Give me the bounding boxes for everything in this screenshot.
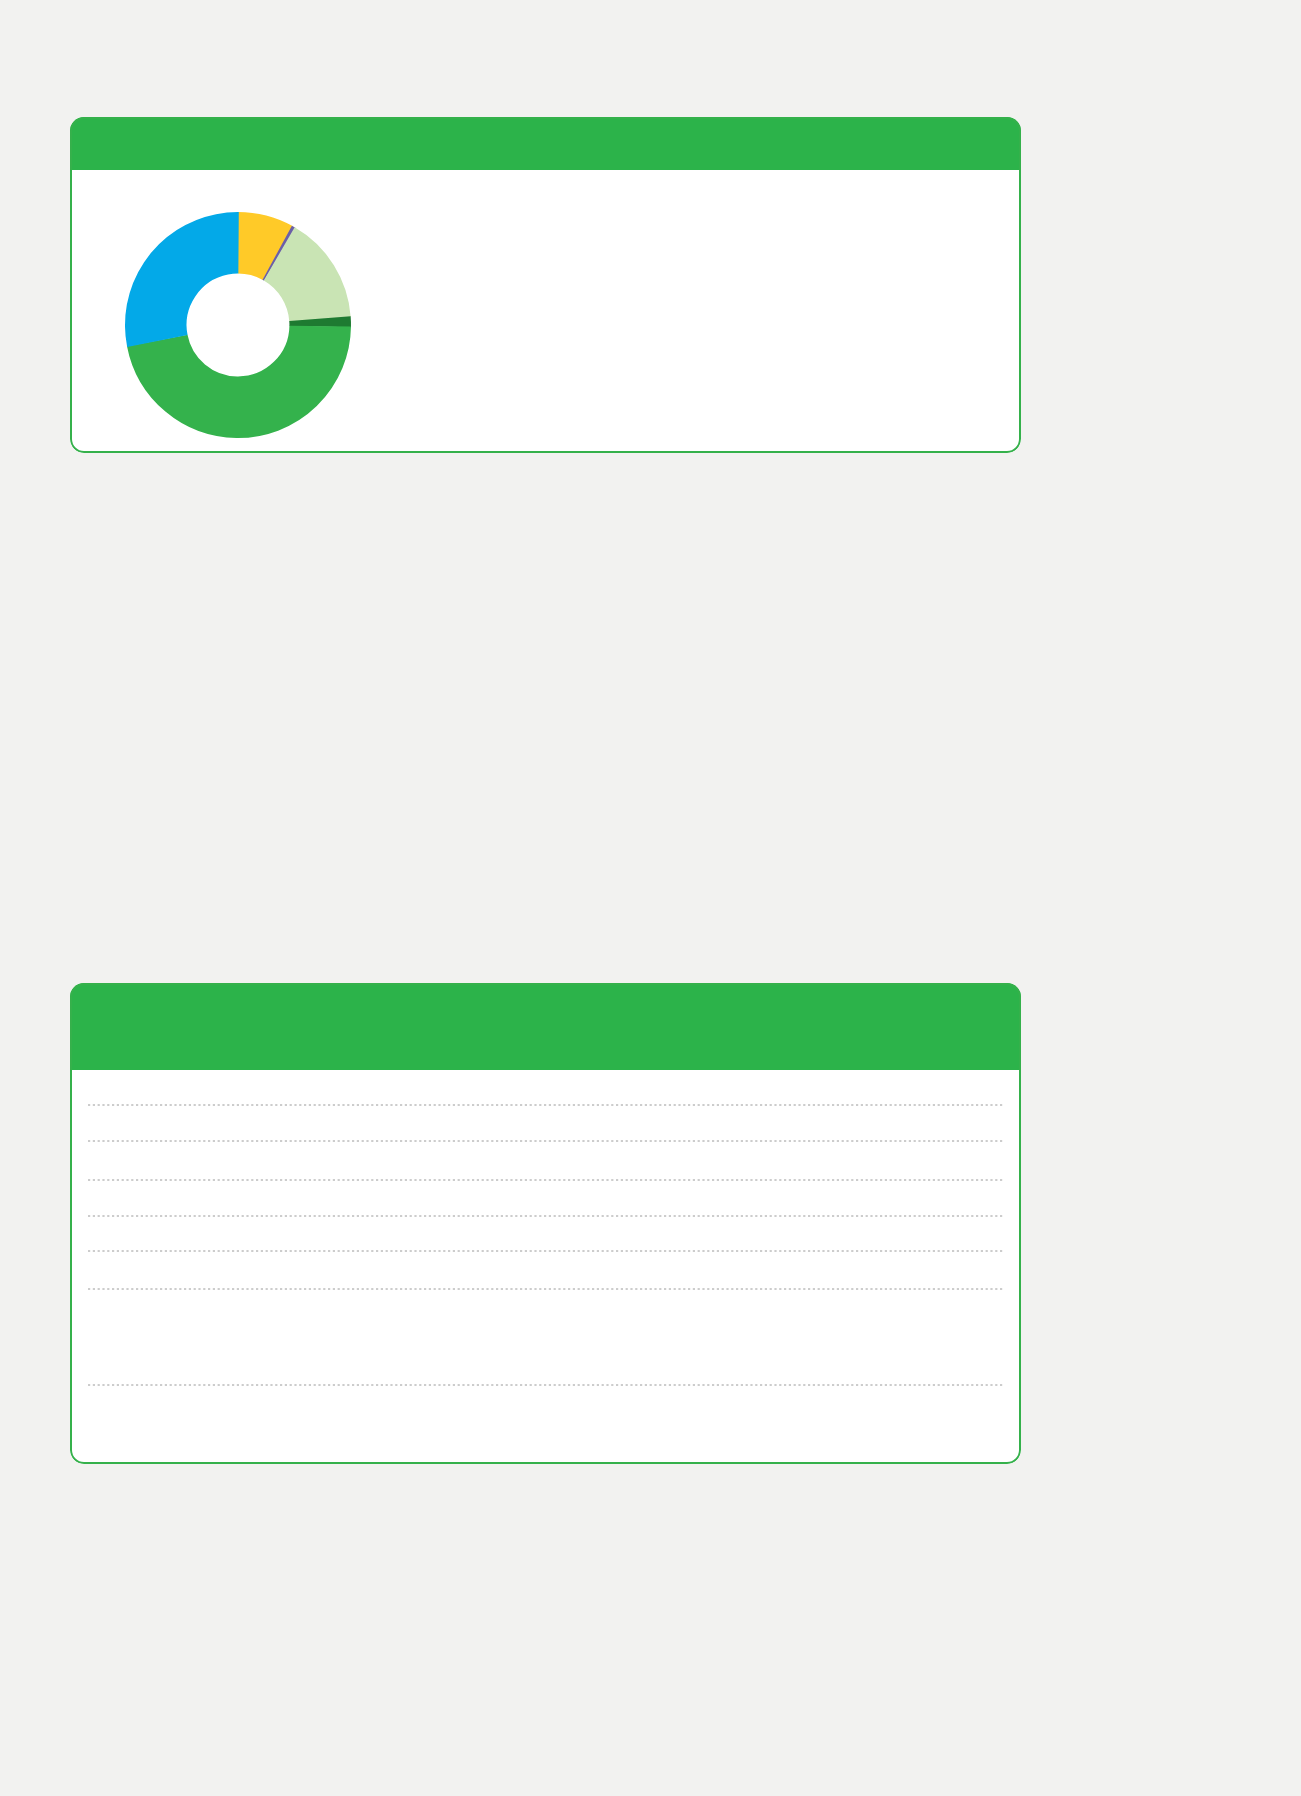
- button[interactable]: [70, 117, 1021, 453]
- button[interactable]: [70, 983, 1021, 1464]
